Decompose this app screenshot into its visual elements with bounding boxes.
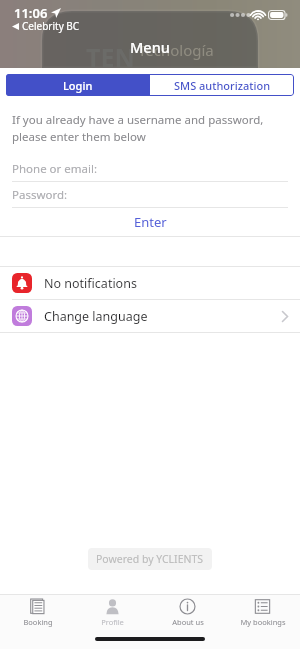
staticText: About us	[172, 617, 204, 627]
button[interactable]: SMS authorization	[150, 74, 294, 96]
staticText: My bookings	[240, 617, 286, 627]
button[interactable]: Back to Celebrity BC	[12, 19, 80, 33]
button[interactable]: Change language	[0, 300, 300, 332]
staticText: Change language	[44, 308, 148, 325]
button[interactable]: No notifications	[0, 267, 300, 299]
staticText: TEN	[86, 40, 135, 68]
button[interactable]: Booking	[0, 598, 75, 627]
staticText: 11:06	[14, 4, 48, 22]
staticText: No notifications	[44, 275, 137, 292]
staticText: Password:	[12, 187, 68, 203]
button[interactable]: About us	[150, 598, 225, 627]
staticText: SMS authorization	[174, 78, 271, 93]
button[interactable]: Enter	[0, 208, 300, 236]
button[interactable]: My bookings	[225, 598, 300, 627]
staticText: Booking	[23, 617, 53, 627]
staticText: If you already have a username and passw…	[12, 112, 288, 144]
staticText: Profile	[101, 617, 124, 627]
button[interactable]: Password:	[0, 182, 300, 207]
staticText: Login	[63, 78, 93, 93]
staticText: Menu	[130, 37, 170, 57]
staticText: Powered by YCLIENTS	[96, 552, 204, 566]
staticText: Tecnología	[138, 40, 214, 60]
staticText: Phone or email:	[12, 161, 98, 177]
staticText: Celebrity BC	[22, 19, 80, 33]
staticText: Enter	[134, 213, 167, 231]
button[interactable]: Login	[6, 74, 150, 96]
button[interactable]: Profile	[75, 598, 150, 627]
button[interactable]: Phone or email:	[0, 156, 300, 181]
